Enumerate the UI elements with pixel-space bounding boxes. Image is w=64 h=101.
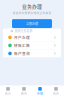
button[interactable]: 服务 bbox=[16, 86, 32, 96]
staticText: 办理 bbox=[37, 91, 43, 95]
staticText: 请选择您需要办理的业务类型 bbox=[12, 11, 51, 15]
staticText: 我的 bbox=[53, 91, 59, 95]
button[interactable]: 我的 bbox=[48, 86, 64, 96]
button[interactable]: 账户查询 bbox=[3, 50, 61, 57]
staticText: 服务 bbox=[21, 91, 27, 95]
button[interactable]: 转账汇款 bbox=[3, 42, 61, 49]
staticText: 首页 bbox=[5, 91, 11, 95]
staticText: 账户查询 bbox=[14, 51, 30, 56]
staticText: 业务办理 bbox=[22, 3, 42, 10]
staticText: 立即办理 bbox=[26, 21, 38, 26]
staticText: 搜索业务名称 bbox=[14, 29, 32, 33]
staticText: 开户办理 bbox=[14, 35, 30, 40]
button[interactable]: 首页 bbox=[0, 86, 16, 96]
staticText: 转账汇款 bbox=[14, 43, 30, 48]
button[interactable]: 开户办理 bbox=[3, 33, 61, 41]
button[interactable]: 搜索业务名称 bbox=[3, 28, 61, 33]
button[interactable]: 办理 bbox=[32, 86, 48, 96]
